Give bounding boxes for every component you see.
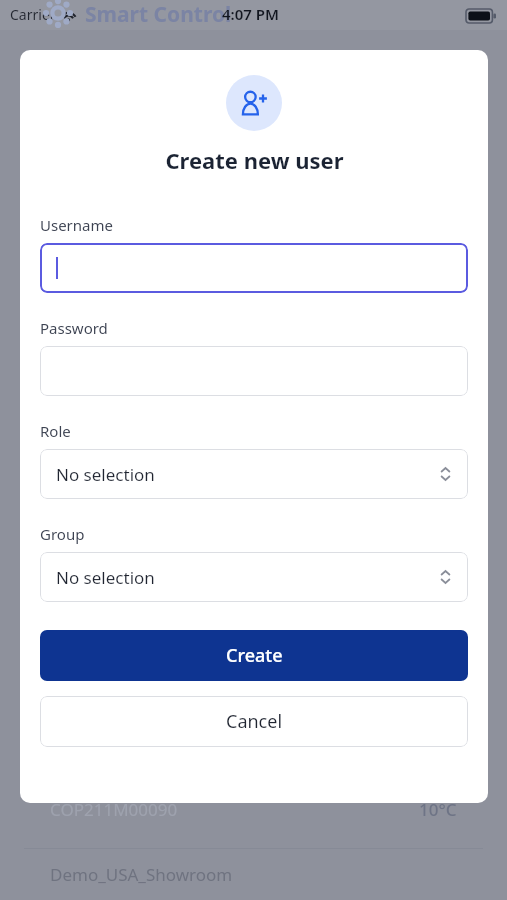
staticText: Create new user: [165, 145, 344, 175]
staticText: Username: [40, 215, 113, 235]
staticText: Role: [40, 421, 71, 441]
button[interactable]: No selection: [40, 552, 468, 602]
staticText: COP211M00090: [50, 798, 178, 821]
button[interactable]: Create: [40, 630, 468, 681]
staticText: 4:07 PM: [222, 4, 279, 24]
staticText: 10°C: [419, 798, 457, 821]
button[interactable]: Cancel: [40, 696, 468, 747]
staticText: Smart Control: [85, 0, 232, 29]
button[interactable]: [40, 346, 468, 396]
staticText: Carrier: [10, 5, 56, 24]
staticText: Group: [40, 524, 85, 544]
button[interactable]: No selection: [40, 449, 468, 499]
staticText: No selection: [56, 463, 155, 486]
staticText: Cancel: [226, 709, 283, 734]
staticText: Password: [40, 318, 108, 338]
staticText: Create: [226, 643, 283, 668]
button[interactable]: [40, 243, 468, 293]
staticText: Demo_USA_Showroom: [50, 863, 233, 886]
staticText: No selection: [56, 566, 155, 589]
